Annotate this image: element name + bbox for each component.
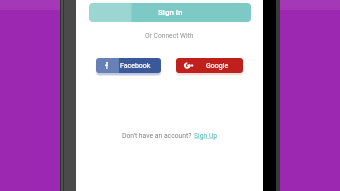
- button[interactable]: Facebook: [96, 58, 161, 73]
- button[interactable]: Google: [176, 58, 243, 73]
- button[interactable]: Sign In: [89, 3, 251, 22]
- button[interactable]: Sign Up: [194, 132, 218, 140]
- staticText: Facebook: [120, 62, 151, 70]
- staticText: Don't have an account?: [122, 132, 194, 140]
- staticText: Google: [206, 62, 229, 70]
- staticText: Or Connect With: [145, 32, 194, 40]
- staticText: Sign Up: [194, 132, 218, 140]
- staticText: Sign In: [158, 8, 183, 17]
